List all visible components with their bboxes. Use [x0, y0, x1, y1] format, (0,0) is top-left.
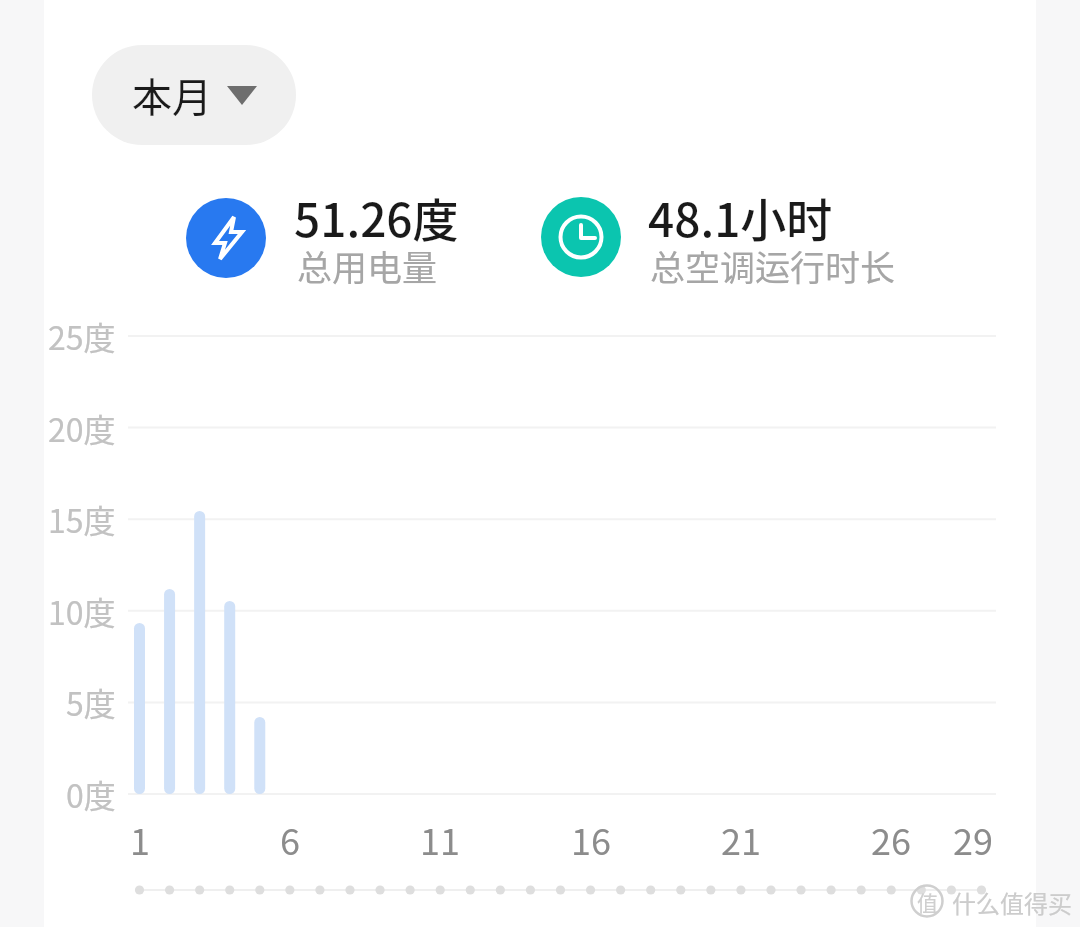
- staticText: 29: [953, 813, 993, 865]
- staticText: 20度: [48, 405, 116, 451]
- staticText: 11: [420, 813, 460, 865]
- button[interactable]: 本月: [92, 45, 296, 145]
- staticText: 什么值得买: [952, 885, 1072, 917]
- staticText: 26: [871, 813, 911, 865]
- staticText: 总用电量: [297, 240, 438, 291]
- staticText: 21: [721, 813, 761, 865]
- staticText: 25度: [48, 313, 116, 359]
- staticText: 总空调运行时长: [650, 240, 896, 291]
- staticText: 值: [917, 887, 938, 915]
- button[interactable]: [541, 197, 621, 277]
- staticText: 6: [280, 813, 300, 865]
- staticText: 0度: [66, 771, 116, 817]
- staticText: 10度: [48, 588, 116, 634]
- staticText: 1: [130, 813, 150, 865]
- staticText: 16: [571, 813, 611, 865]
- staticText: 15度: [48, 496, 116, 542]
- button[interactable]: [186, 198, 266, 278]
- staticText: 5度: [66, 679, 116, 725]
- staticText: 本月: [132, 66, 212, 124]
- staticText: 51.26度: [294, 184, 459, 251]
- staticText: 48.1小时: [648, 184, 833, 251]
